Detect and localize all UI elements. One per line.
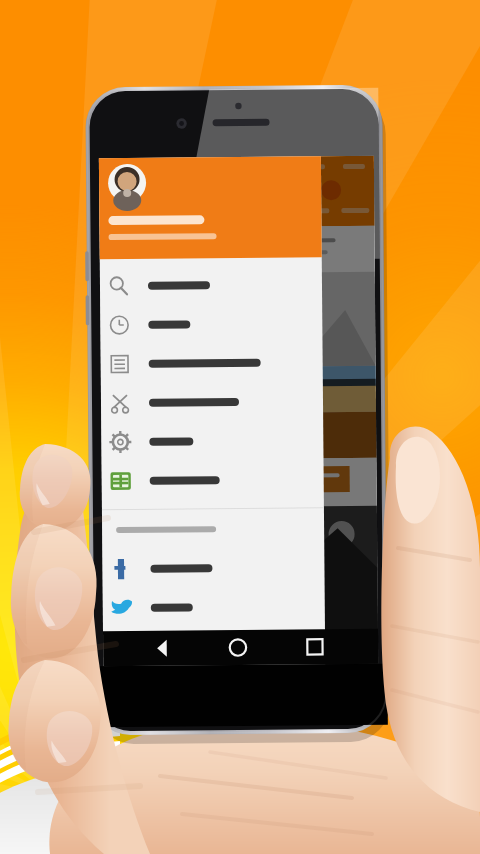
- button[interactable]: Consumed Options: [101, 381, 323, 422]
- button[interactable]: Settings: [101, 420, 323, 461]
- button[interactable]: Twitter: [103, 586, 325, 627]
- button[interactable]: Checklist Downloads: [100, 342, 323, 383]
- button[interactable]: Inbox: [100, 303, 322, 344]
- button[interactable]: Account header: [99, 156, 322, 259]
- button[interactable]: Back: [148, 630, 178, 666]
- button[interactable]: Facebook: [102, 547, 325, 588]
- button[interactable]: My Account: [100, 264, 322, 305]
- button[interactable]: Recent apps: [297, 629, 327, 664]
- button[interactable]: Backup Apps: [101, 459, 324, 500]
- button[interactable]: Home: [224, 630, 254, 665]
